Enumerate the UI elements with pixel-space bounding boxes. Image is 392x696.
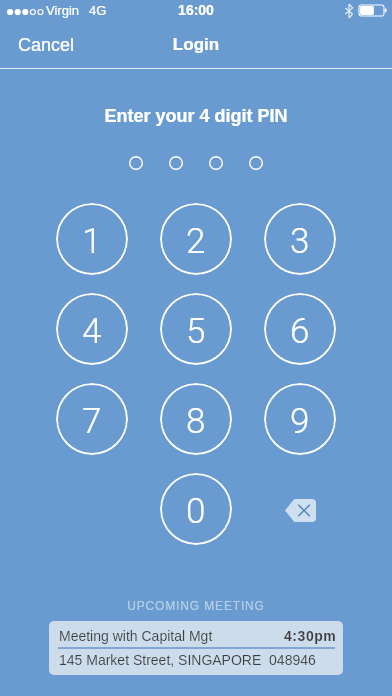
button[interactable]: 2: [160, 203, 232, 275]
staticText: 0: [186, 491, 206, 532]
staticText: 4G: [89, 3, 107, 18]
button[interactable]: 1: [56, 203, 128, 275]
button[interactable]: 3: [264, 203, 336, 275]
button[interactable]: 7: [56, 383, 128, 455]
button[interactable]: Delete: [264, 473, 336, 545]
button[interactable]: 6: [264, 293, 336, 365]
staticText: 8: [186, 401, 206, 442]
button[interactable]: 4: [56, 293, 128, 365]
staticText: Enter your 4 digit PIN: [0, 106, 392, 126]
button[interactable]: 8: [160, 383, 232, 455]
button[interactable]: Meeting with Capital Mgt: [49, 621, 343, 675]
button[interactable]: 9: [264, 383, 336, 455]
staticText: 4:30pm: [284, 628, 337, 644]
staticText: 6: [290, 311, 310, 352]
staticText: 7: [82, 401, 102, 442]
staticText: Cancel: [18, 35, 75, 55]
staticText: Meeting with Capital Mgt: [59, 628, 213, 644]
staticText: 145 Market Street, SINGAPORE 048946: [59, 652, 316, 668]
button[interactable]: 5: [160, 293, 232, 365]
staticText: 3: [290, 221, 310, 262]
staticText: Login: [0, 35, 392, 54]
staticText: Virgin: [46, 3, 80, 18]
staticText: 2: [186, 221, 206, 262]
staticText: 9: [290, 401, 310, 442]
staticText: 16:00: [0, 2, 392, 18]
staticText: 5: [186, 311, 206, 352]
staticText: 4: [82, 311, 102, 352]
staticText: UPCOMING MEETING: [0, 599, 392, 612]
staticText: 1: [82, 221, 102, 262]
button[interactable]: 0: [160, 473, 232, 545]
button[interactable]: Cancel: [0, 28, 89, 62]
